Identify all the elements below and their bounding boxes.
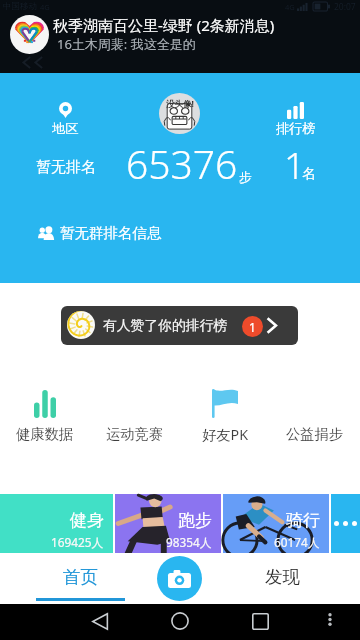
staticText: 好友PK <box>202 425 249 444</box>
staticText: 60174人 <box>274 534 320 550</box>
staticText: 步 <box>239 169 252 185</box>
button[interactable]: 好友PK <box>180 386 270 444</box>
button[interactable]: 运动竞赛 <box>90 386 180 444</box>
button[interactable]: 跑步 <box>115 494 221 553</box>
button[interactable]: 返回 <box>84 605 116 637</box>
staticText: 有人赞了你的排行榜 <box>103 317 228 334</box>
button[interactable]: 拍照 <box>157 556 202 601</box>
staticText: 公益捐步 <box>286 425 344 443</box>
button[interactable]: 地区 <box>45 102 85 137</box>
button[interactable]: 健身 <box>0 494 113 553</box>
button[interactable]: 发现 <box>237 566 327 588</box>
button[interactable]: 菜单 <box>318 607 342 631</box>
staticText: 1 <box>249 319 256 335</box>
staticText: 骑行 <box>286 510 320 531</box>
staticText: 名 <box>302 165 316 182</box>
staticText: 秋季湖南百公里-绿野 (2条新消息) <box>53 15 275 35</box>
staticText: 健身 <box>70 510 104 531</box>
staticText: 4G <box>285 2 295 12</box>
button[interactable]: 有人赞了你的排行榜 <box>61 306 298 345</box>
staticText: 地区 <box>52 120 79 137</box>
staticText: 4G <box>40 2 50 12</box>
button[interactable]: 首页 <box>35 553 125 604</box>
staticText: 暂无群排名信息 <box>60 224 162 242</box>
button[interactable]: 最近任务 <box>244 605 276 637</box>
button[interactable]: 暂无群排名信息 <box>38 224 162 242</box>
button[interactable]: 主屏幕 <box>164 605 196 637</box>
button[interactable]: 骑行 <box>223 494 329 553</box>
button[interactable]: 健康数据 <box>0 386 90 444</box>
button[interactable]: 更多 <box>331 494 360 553</box>
staticText: 发现 <box>265 566 300 588</box>
staticText: 跑步 <box>178 510 212 531</box>
button[interactable]: 头像 <box>159 93 200 134</box>
staticText: 98354人 <box>166 534 212 550</box>
button[interactable]: 排行榜 <box>271 102 320 137</box>
button[interactable]: 公益捐步 <box>270 386 360 444</box>
staticText: 首页 <box>63 566 98 588</box>
staticText: 1 <box>284 139 306 189</box>
staticText: 16土木周裴: 我这全是的 <box>57 35 196 53</box>
staticText: 65376 <box>126 137 238 190</box>
staticText: 中国移动 <box>3 1 37 12</box>
staticText: 没头像! <box>166 98 194 110</box>
staticText: 169425人 <box>51 534 104 550</box>
staticText: 20:07 <box>334 1 356 13</box>
staticText: 暂无排名 <box>36 158 96 177</box>
staticText: 健康数据 <box>16 425 74 443</box>
staticText: 排行榜 <box>276 120 316 137</box>
staticText: 运动竞赛 <box>106 425 164 443</box>
